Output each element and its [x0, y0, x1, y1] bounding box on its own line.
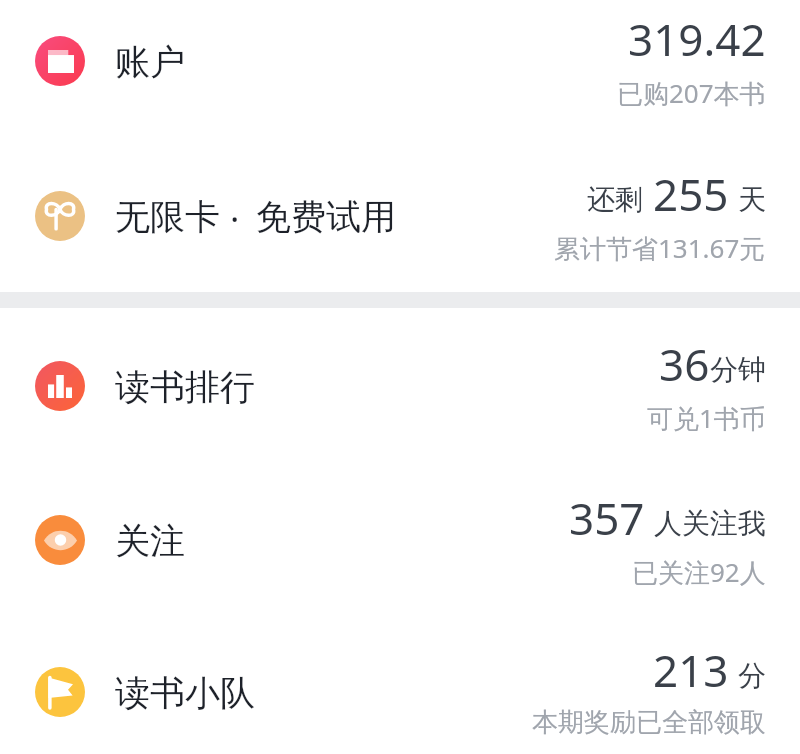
staticText: 天 — [738, 182, 766, 217]
staticText: 357 — [569, 488, 645, 548]
staticText: 分 — [738, 658, 766, 693]
other: 读书排行 — [35, 361, 85, 411]
staticText: 读书排行 — [115, 365, 255, 409]
button[interactable]: 关注 — [0, 463, 800, 617]
staticText: 无限卡 — [115, 195, 220, 239]
staticText: 免费试用 — [256, 195, 396, 239]
staticText: 319.42 — [628, 9, 766, 69]
button[interactable]: 读书排行 — [0, 309, 800, 463]
staticText: 关注 — [115, 519, 185, 563]
staticText: 255 — [653, 164, 729, 224]
staticText: 可兑1书币 — [647, 400, 766, 436]
button[interactable]: 无限卡 — [0, 139, 800, 293]
other: 读书小队 — [35, 667, 85, 717]
staticText: 人关注我 — [654, 506, 766, 541]
staticText: 读书小队 — [115, 671, 255, 715]
staticText: 账户 — [115, 40, 185, 84]
staticText: · — [230, 195, 240, 243]
button[interactable]: 读书小队 — [0, 615, 800, 754]
staticText: 已关注92人 — [632, 554, 766, 590]
staticText: 累计节省131.67元 — [554, 230, 766, 266]
staticText: 213 — [653, 640, 729, 700]
staticText: 已购207本书 — [617, 75, 766, 111]
staticText: 36 — [659, 334, 710, 394]
other: 账户 — [35, 36, 85, 86]
other: 关注 — [35, 515, 85, 565]
staticText: 本期奖励已全部领取 — [532, 706, 766, 739]
staticText: 还剩 — [587, 182, 643, 217]
other: 无限卡 — [35, 191, 85, 241]
button[interactable]: 账户 — [0, 0, 800, 138]
staticText: 分钟 — [710, 352, 766, 387]
